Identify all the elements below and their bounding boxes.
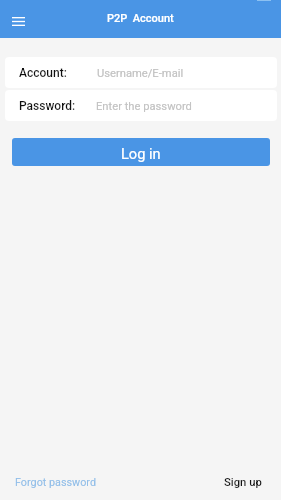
staticText: Sign up: [224, 476, 262, 489]
button[interactable]: Forgot password: [0, 476, 97, 489]
staticText: Forgot password: [15, 476, 97, 489]
button[interactable]: Open navigation menu: [5, 8, 31, 34]
staticText: Enter the password: [96, 100, 192, 113]
staticText: Password:: [19, 99, 76, 113]
button[interactable]: Password:: [5, 90, 277, 121]
button[interactable]: Sign up: [224, 476, 281, 489]
staticText: P2P Account: [107, 12, 174, 25]
button[interactable]: Log in: [12, 138, 270, 166]
staticText: Log in: [121, 145, 161, 162]
staticText: Account:: [19, 66, 67, 80]
button[interactable]: Account:: [5, 57, 277, 88]
staticText: Username/E-mail: [97, 67, 184, 80]
